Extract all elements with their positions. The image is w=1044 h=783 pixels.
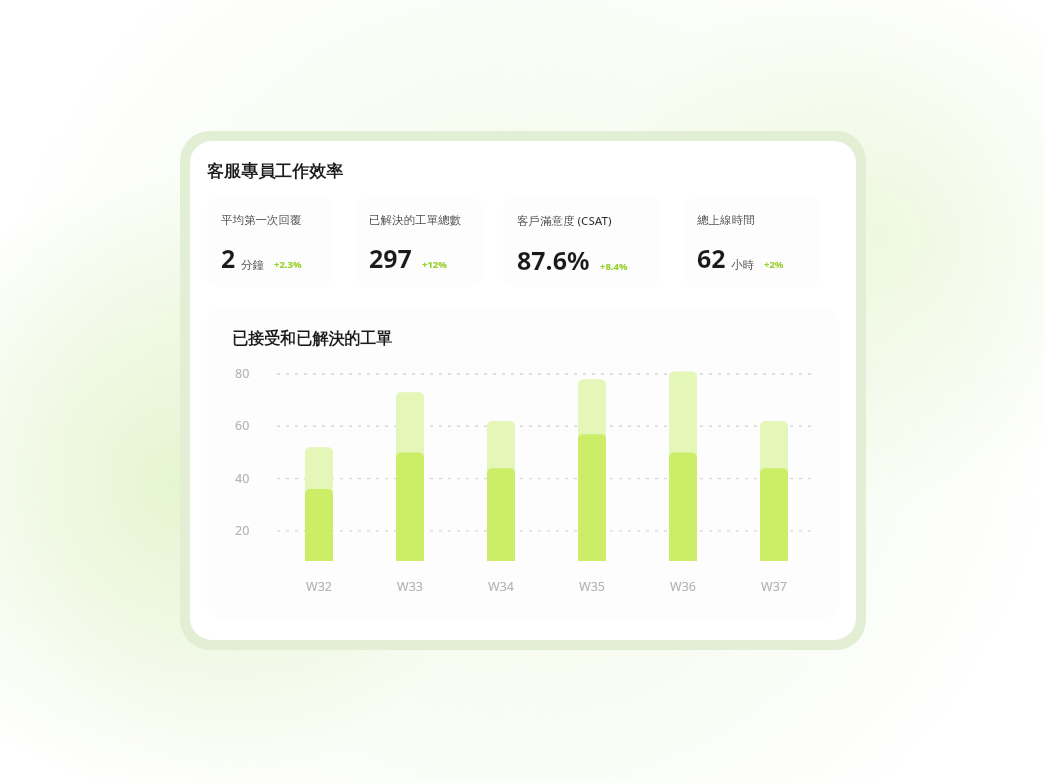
staticText: W37 bbox=[750, 578, 798, 595]
staticText: 已解決的工單總數 bbox=[369, 213, 461, 227]
staticText: W36 bbox=[659, 578, 707, 595]
staticText: 分鐘 bbox=[241, 258, 264, 272]
staticText: W34 bbox=[477, 578, 525, 595]
staticText: 20 bbox=[235, 522, 250, 539]
button[interactable]: 平均第一次回覆 bbox=[207, 198, 334, 287]
staticText: 平均第一次回覆 bbox=[221, 213, 302, 227]
staticText: +8.4% bbox=[600, 260, 628, 273]
staticText: 總上線時間 bbox=[697, 213, 755, 227]
staticText: 80 bbox=[235, 365, 250, 382]
staticText: 客服專員工作效率 bbox=[207, 161, 343, 182]
staticText: +2.3% bbox=[274, 258, 302, 271]
staticText: +2% bbox=[764, 258, 784, 271]
staticText: 小時 bbox=[731, 258, 754, 272]
button[interactable]: 客戶滿意度 (CSAT) bbox=[503, 198, 662, 287]
staticText: 62 bbox=[697, 241, 726, 275]
staticText: W33 bbox=[386, 578, 434, 595]
staticText: +12% bbox=[422, 258, 447, 271]
button[interactable]: 總上線時間 bbox=[683, 198, 822, 287]
button[interactable]: 已解決的工單總數 bbox=[355, 198, 482, 287]
staticText: 60 bbox=[235, 417, 250, 434]
staticText: 已接受和已解決的工單 bbox=[232, 329, 392, 349]
staticText: 297 bbox=[369, 241, 412, 275]
staticText: 客戶滿意度 (CSAT) bbox=[517, 213, 612, 229]
staticText: W32 bbox=[295, 578, 343, 595]
staticText: W35 bbox=[568, 578, 616, 595]
staticText: 40 bbox=[235, 470, 250, 487]
staticText: 2 bbox=[221, 241, 236, 275]
staticText: 87.6% bbox=[517, 243, 590, 277]
button[interactable]: 已接受和已解決的工單 bbox=[207, 308, 839, 618]
